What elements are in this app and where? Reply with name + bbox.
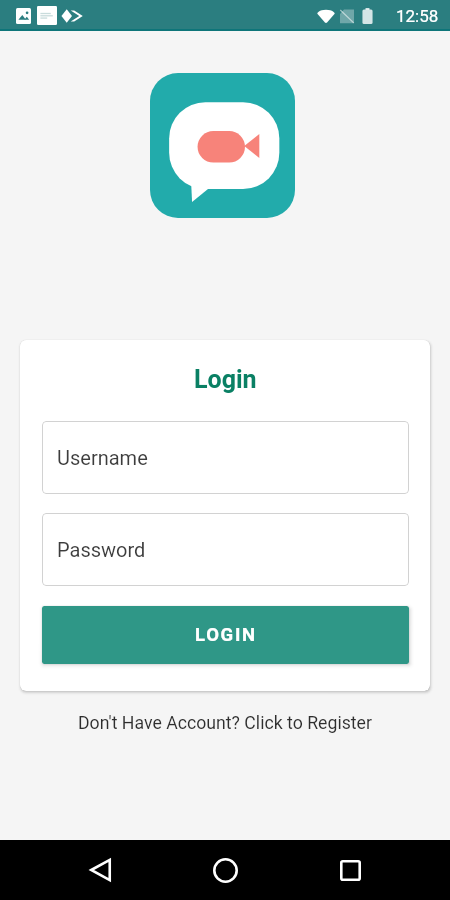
button[interactable]: Home: [195, 840, 255, 900]
staticText: Login: [194, 365, 257, 394]
staticText: Username: [57, 446, 148, 469]
button[interactable]: Password: [42, 513, 409, 586]
staticText: Don't Have Account? Click to Register: [78, 713, 372, 734]
staticText: LOGIN: [195, 624, 257, 646]
button[interactable]: LOGIN: [42, 606, 409, 664]
button[interactable]: Recent apps: [320, 840, 380, 900]
button[interactable]: Back: [70, 840, 130, 900]
button[interactable]: Username: [42, 421, 409, 494]
button[interactable]: Don't Have Account? Click to Register: [68, 708, 382, 739]
staticText: Password: [57, 538, 146, 561]
staticText: 12:58: [396, 6, 439, 26]
